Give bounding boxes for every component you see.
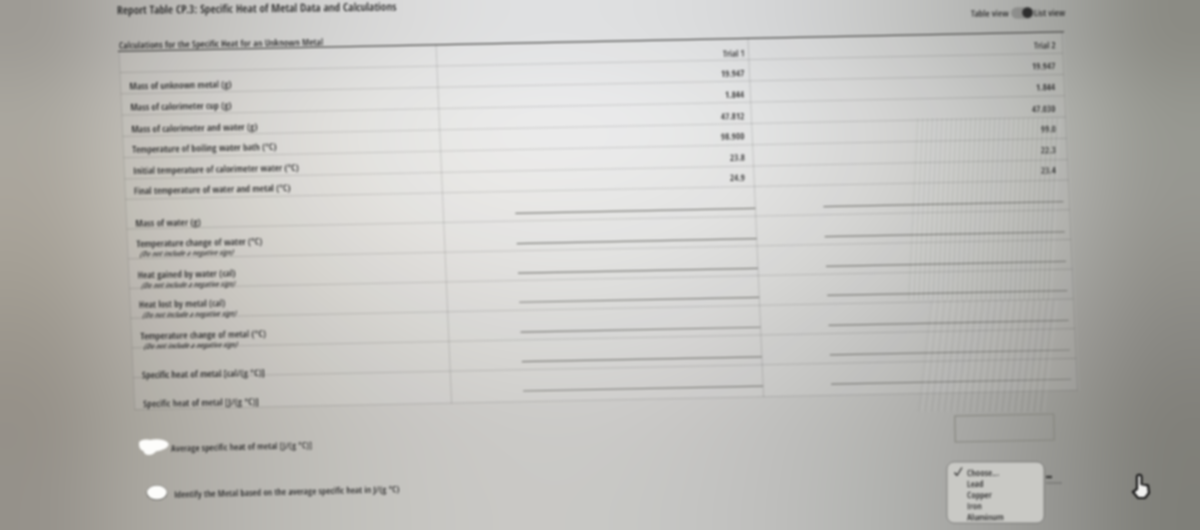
button[interactable]: Report Table CP.3 Specific Heat of Metal… — [0, 0, 1200, 530]
